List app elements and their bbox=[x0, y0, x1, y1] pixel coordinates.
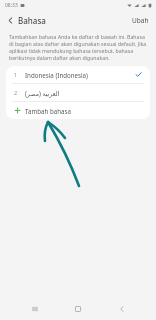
staticText: Bahasa bbox=[18, 15, 46, 26]
button[interactable]: Ubah bbox=[128, 13, 153, 28]
button[interactable]: 2 bbox=[6, 84, 150, 101]
button[interactable]: Back bbox=[113, 300, 131, 318]
staticText: 2 bbox=[14, 89, 18, 96]
staticText: 1 bbox=[14, 71, 18, 78]
staticText: العربية (مصر) bbox=[25, 89, 142, 97]
button[interactable]: Recent apps bbox=[26, 300, 44, 318]
staticText: Ubah bbox=[132, 16, 149, 25]
button[interactable]: Tambah bahasa bbox=[6, 102, 150, 119]
staticText: 08:33 bbox=[5, 2, 18, 9]
staticText: Tambahkan bahasa Anda ke daftar di bawah… bbox=[9, 33, 147, 61]
button[interactable]: 1 bbox=[6, 66, 150, 83]
button[interactable]: Back bbox=[3, 14, 18, 27]
staticText: Indonesia (Indonesia) bbox=[25, 71, 135, 79]
staticText: Tambah bahasa bbox=[25, 107, 71, 115]
button[interactable]: Home bbox=[69, 300, 87, 318]
